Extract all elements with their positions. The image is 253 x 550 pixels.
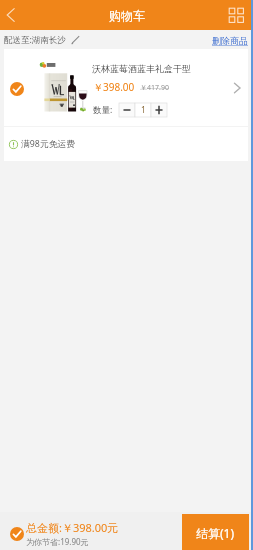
button[interactable]: Categories — [225, 0, 253, 30]
button[interactable]: Back — [0, 0, 24, 30]
button[interactable]: Increase quantity — [151, 103, 167, 117]
staticText: 总金额:￥398.00元 — [26, 520, 119, 535]
staticText: 数量: — [93, 104, 113, 116]
staticText: 1 — [141, 104, 146, 116]
staticText: 沃林蓝莓酒蓝丰礼盒干型 — [92, 63, 191, 74]
button[interactable]: 删除商品 — [212, 34, 253, 46]
staticText: 删除商品 — [212, 35, 248, 46]
button[interactable]: Edit address — [71, 35, 81, 45]
button[interactable]: Select all — [10, 527, 24, 541]
button[interactable]: Decrease quantity — [119, 103, 135, 117]
staticText: ￥398.00 — [93, 80, 135, 94]
button[interactable]: 结算(1) — [182, 514, 249, 550]
staticText: 购物车 — [109, 8, 145, 23]
staticText: 结算(1) — [196, 525, 235, 541]
staticText: 配送至:湖南长沙 — [4, 34, 66, 46]
staticText: 为你节省:19.90元 — [26, 536, 89, 547]
staticText: 满98元免运费 — [21, 138, 76, 150]
button[interactable]: Product details — [226, 49, 248, 126]
staticText: ￥417.90 — [140, 83, 169, 93]
button[interactable]: Select item — [10, 82, 24, 96]
